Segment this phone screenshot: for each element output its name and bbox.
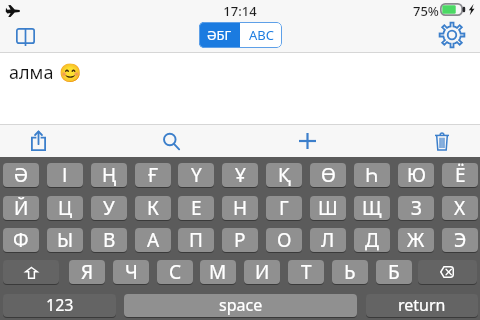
button[interactable]: Ф [3, 228, 39, 252]
staticText: Ф [13, 228, 29, 251]
button[interactable]: Қ [266, 163, 302, 187]
staticText: Ә [14, 163, 29, 186]
button[interactable]: Б [376, 260, 412, 284]
staticText: Ц [58, 196, 73, 219]
staticText: И [255, 260, 270, 283]
button[interactable]: Ь [332, 260, 368, 284]
staticText: О [277, 228, 292, 251]
button[interactable]: А [135, 228, 171, 252]
button[interactable]: Ш [310, 196, 346, 220]
staticText: алма [9, 60, 54, 85]
staticText: Р [234, 228, 246, 251]
button[interactable]: Һ [354, 163, 390, 187]
button[interactable]: Backspace [418, 260, 477, 284]
staticText: space [219, 294, 263, 316]
staticText: Т [301, 260, 312, 283]
button[interactable]: Ы [47, 228, 83, 252]
button[interactable]: У [91, 196, 127, 220]
staticText: ABC [249, 26, 274, 44]
staticText: Х [454, 196, 466, 219]
staticText: Ғ [148, 163, 159, 186]
button[interactable]: О [266, 228, 302, 252]
staticText: Г [279, 196, 289, 219]
button[interactable]: П [178, 228, 214, 252]
staticText: ӘБГ [207, 26, 232, 44]
staticText: Й [14, 196, 29, 219]
button[interactable]: return [366, 294, 478, 317]
button[interactable]: Ю [398, 163, 434, 187]
button[interactable]: ӘБГ [199, 22, 240, 48]
button[interactable]: Settings [435, 18, 468, 51]
button[interactable]: Ң [91, 163, 127, 187]
staticText: Ы [57, 228, 74, 251]
button[interactable]: Х [442, 196, 478, 220]
staticText: Д [365, 228, 379, 251]
button[interactable]: Я [69, 260, 105, 284]
staticText: Ш [318, 196, 338, 219]
button[interactable]: Dictionary [8, 22, 42, 50]
button[interactable]: Share [22, 125, 54, 157]
staticText: Щ [362, 196, 382, 219]
staticText: Қ [278, 163, 291, 186]
button[interactable]: З [398, 196, 434, 220]
button[interactable]: Ё [442, 163, 478, 187]
button[interactable]: Ө [310, 163, 346, 187]
button[interactable]: Ү [178, 163, 214, 187]
staticText: Ө [321, 163, 336, 186]
button[interactable]: Search [155, 125, 187, 157]
staticText: К [147, 196, 159, 219]
button[interactable]: І [47, 163, 83, 187]
button[interactable]: Ж [398, 228, 434, 252]
staticText: 75% [413, 2, 439, 20]
button[interactable]: М [200, 260, 236, 284]
button[interactable]: Л [310, 228, 346, 252]
staticText: П [189, 228, 203, 251]
staticText: Һ [365, 163, 379, 186]
button[interactable]: Ұ [222, 163, 258, 187]
staticText: Л [321, 228, 335, 251]
button[interactable]: Э [442, 228, 478, 252]
staticText: 123 [46, 294, 74, 316]
button[interactable]: К [135, 196, 171, 220]
button[interactable]: С [157, 260, 193, 284]
staticText: В [103, 228, 116, 251]
staticText: return [398, 294, 446, 316]
button[interactable]: Ц [47, 196, 83, 220]
staticText: Ю [407, 163, 426, 186]
staticText: У [103, 196, 115, 219]
button[interactable]: space [124, 294, 357, 317]
button[interactable]: Щ [354, 196, 390, 220]
staticText: Ұ [235, 163, 246, 186]
staticText: Ү [191, 163, 202, 186]
button[interactable]: Add [291, 125, 323, 157]
button[interactable]: Т [288, 260, 324, 284]
button[interactable]: И [244, 260, 280, 284]
staticText: 17:14 [0, 2, 480, 20]
button[interactable]: Ч [113, 260, 149, 284]
button[interactable]: Shift [3, 260, 59, 284]
button[interactable]: Г [266, 196, 302, 220]
staticText: І [62, 163, 68, 186]
button[interactable]: Ә [3, 163, 39, 187]
staticText: Э [454, 228, 467, 251]
staticText: Ж [407, 228, 425, 251]
button[interactable]: Й [3, 196, 39, 220]
staticText: Ь [344, 260, 356, 283]
button[interactable]: ABC [240, 22, 282, 48]
button[interactable]: Д [354, 228, 390, 252]
staticText: З [411, 196, 422, 219]
button[interactable]: Р [222, 228, 258, 252]
button[interactable]: Н [222, 196, 258, 220]
staticText: 😊 [59, 62, 82, 83]
button[interactable]: В [91, 228, 127, 252]
staticText: Е [191, 196, 202, 219]
staticText: С [169, 260, 182, 283]
button[interactable]: Е [178, 196, 214, 220]
staticText: Я [81, 260, 94, 283]
button[interactable]: 123 [3, 294, 116, 317]
button[interactable]: Ғ [135, 163, 171, 187]
staticText: Ё [455, 163, 466, 186]
staticText: Ч [125, 260, 138, 283]
button[interactable]: Delete [426, 125, 458, 157]
staticText: Б [388, 260, 400, 283]
